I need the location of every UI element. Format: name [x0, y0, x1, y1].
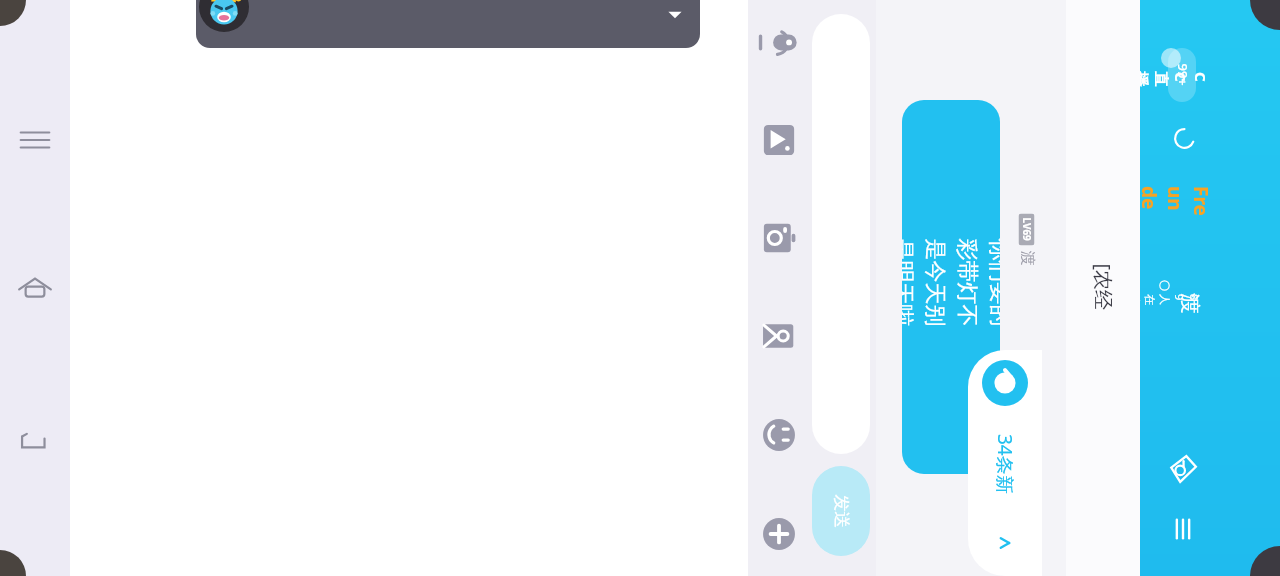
button[interactable]: Profile	[199, 0, 249, 32]
staticText: [农经学院新生根据地] LMZZZZZZ: 我不是，我家老苟了	[1089, 263, 1116, 325]
button[interactable]: More	[758, 513, 800, 555]
button[interactable]: Camera	[758, 217, 800, 259]
staticText: 34条新消息	[992, 434, 1018, 508]
button[interactable]: 你们要的彩带灯不是今天别 是明天啦	[902, 100, 1000, 474]
button[interactable]: Back	[0, 420, 70, 464]
staticText: LV69	[1019, 217, 1033, 241]
button[interactable]: Like	[1172, 126, 1198, 152]
staticText: 99+	[1173, 63, 1191, 86]
button[interactable]: Face	[758, 414, 800, 456]
button[interactable]	[196, 0, 700, 48]
button[interactable]: 34条新消息	[968, 350, 1042, 576]
button[interactable]: 99+	[1168, 48, 1196, 102]
staticText: Freunde	[1136, 186, 1214, 220]
button[interactable]: Recents	[0, 118, 70, 162]
staticText: 你们要的彩带灯不是今天别 是明天啦	[902, 238, 1000, 336]
button[interactable]: Home	[0, 266, 70, 310]
button[interactable]: Share	[1166, 452, 1200, 486]
staticText: 渡劫 (110)	[1177, 293, 1203, 333]
staticText: 渡劫（Ⅶ和尚）策安单	[1017, 250, 1036, 255]
button[interactable]: Gift	[758, 315, 800, 357]
staticText: CC直播	[1131, 72, 1211, 78]
staticText: 发送	[830, 494, 851, 528]
button[interactable]: Voice	[758, 21, 800, 63]
button[interactable]: 发送	[812, 466, 870, 556]
button[interactable]: Menu	[1168, 514, 1198, 544]
button[interactable]: Emoji	[758, 119, 800, 161]
staticText: 89人在线	[1128, 294, 1202, 306]
